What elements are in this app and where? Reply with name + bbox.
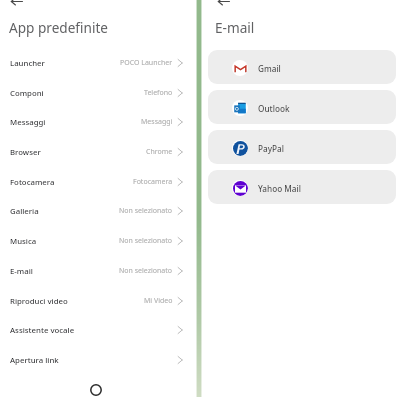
- staticText: Mi Video: [144, 296, 173, 306]
- staticText: Riproduci video: [10, 296, 68, 307]
- staticText: Componi: [10, 88, 44, 99]
- button[interactable]: Gmail: [208, 50, 396, 84]
- button[interactable]: Assistente vocale: [0, 315, 193, 345]
- staticText: Yahoo Mail: [258, 183, 301, 194]
- staticText: PayPal: [258, 143, 284, 154]
- staticText: Musica: [10, 236, 37, 247]
- button[interactable]: Messaggi: [0, 107, 193, 137]
- staticText: Browser: [10, 147, 41, 158]
- button[interactable]: Galleria: [0, 196, 193, 226]
- staticText: E-mail: [215, 18, 255, 37]
- staticText: Galleria: [10, 206, 39, 217]
- staticText: Non selezionato: [119, 266, 173, 276]
- button[interactable]: Yahoo Mail: [208, 170, 396, 204]
- staticText: App predefinite: [9, 18, 109, 37]
- button[interactable]: Fotocamera: [0, 167, 193, 197]
- button[interactable]: E-mail: [0, 256, 193, 286]
- staticText: Gmail: [258, 63, 281, 74]
- staticText: Messaggi: [10, 117, 46, 128]
- button[interactable]: Launcher: [0, 48, 193, 78]
- staticText: Fotocamera: [133, 177, 173, 187]
- staticText: E-mail: [10, 266, 33, 277]
- button[interactable]: Apertura link: [0, 345, 193, 375]
- staticText: Apertura link: [10, 355, 59, 366]
- staticText: Fotocamera: [10, 177, 55, 188]
- staticText: Telefono: [144, 88, 173, 98]
- button[interactable]: Back: [4, 0, 28, 13]
- button[interactable]: Riproduci video: [0, 286, 193, 316]
- staticText: Chrome: [146, 147, 173, 157]
- staticText: POCO Launcher: [120, 58, 173, 68]
- button[interactable]: Browser: [0, 137, 193, 167]
- staticText: Non selezionato: [119, 236, 173, 246]
- staticText: Assistente vocale: [10, 325, 75, 336]
- staticText: Non selezionato: [119, 206, 173, 216]
- button[interactable]: Componi: [0, 78, 193, 108]
- staticText: Messaggi: [141, 117, 173, 127]
- staticText: Outlook: [258, 103, 290, 114]
- button[interactable]: Back: [211, 0, 235, 13]
- button[interactable]: Musica: [0, 226, 193, 256]
- button[interactable]: PayPal: [208, 130, 396, 164]
- staticText: Launcher: [10, 58, 45, 69]
- button[interactable]: Outlook: [208, 90, 396, 124]
